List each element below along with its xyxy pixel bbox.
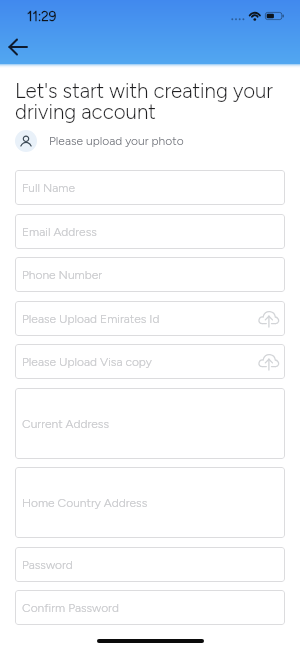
button[interactable]: Password: [15, 547, 285, 582]
staticText: Confirm Password: [22, 601, 119, 615]
staticText: Full Name: [22, 181, 75, 195]
staticText: Please upload your photo: [49, 134, 184, 148]
staticText: Email Address: [22, 225, 97, 239]
staticText: Let's start with creating your driving a…: [15, 79, 285, 124]
button[interactable]: Please upload your photo: [15, 130, 184, 152]
button[interactable]: Home Country Address: [15, 467, 285, 538]
staticText: Please Upload Emirates Id: [22, 312, 160, 326]
button[interactable]: Please Upload Emirates Id: [15, 301, 285, 336]
button[interactable]: Full Name: [15, 170, 285, 205]
button[interactable]: Phone Number: [15, 257, 285, 292]
staticText: Password: [22, 558, 73, 572]
staticText: 11:29: [27, 8, 57, 24]
staticText: Current Address: [22, 417, 110, 431]
staticText: Phone Number: [22, 268, 103, 282]
button[interactable]: Confirm Password: [15, 590, 285, 625]
staticText: Please Upload Visa copy: [22, 355, 152, 369]
button[interactable]: Current Address: [15, 388, 285, 459]
button[interactable]: Please Upload Visa copy: [15, 344, 285, 379]
button[interactable]: Back: [3, 32, 33, 62]
button[interactable]: Email Address: [15, 214, 285, 249]
staticText: Home Country Address: [22, 496, 148, 510]
